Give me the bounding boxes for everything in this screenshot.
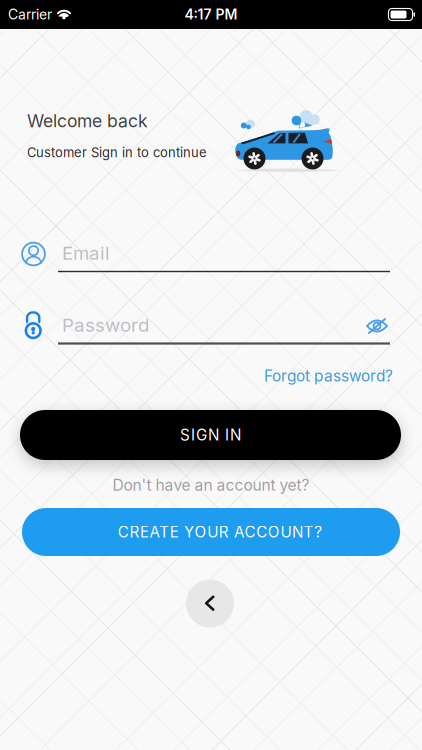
button[interactable]: CREATE YOUR ACCOUNT? xyxy=(22,508,400,556)
button[interactable]: Forgot password? xyxy=(264,367,393,385)
button[interactable]: Show password xyxy=(365,318,388,333)
staticText: SIGN IN xyxy=(180,426,241,444)
button[interactable]: SIGN IN xyxy=(20,410,401,460)
staticText: Email xyxy=(62,242,110,264)
staticText: Password xyxy=(62,314,149,336)
staticText: CREATE YOUR ACCOUNT? xyxy=(118,523,322,541)
staticText: 4:17 PM xyxy=(184,6,237,23)
staticText: Don't have an account yet? xyxy=(112,476,309,494)
staticText: Forgot password? xyxy=(264,367,393,385)
staticText: Carrier xyxy=(8,6,52,23)
staticText: Customer Sign in to continue xyxy=(27,145,207,160)
staticText: Welcome back xyxy=(27,110,148,132)
button[interactable]: Back xyxy=(186,579,234,627)
